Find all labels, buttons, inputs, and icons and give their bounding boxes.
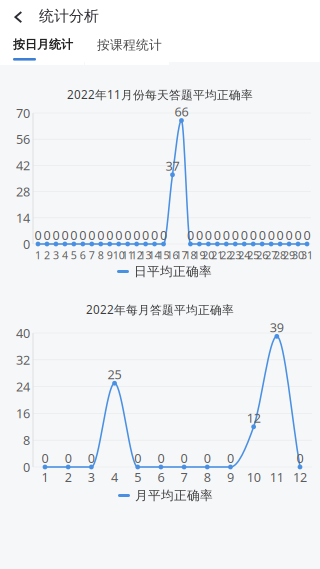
staticText: 0 <box>97 226 104 244</box>
staticText: 28 <box>274 248 286 262</box>
staticText: 17 <box>175 248 187 262</box>
staticText: 0 <box>250 226 257 244</box>
staticText: 31 <box>301 248 313 262</box>
staticText: 66 <box>174 103 188 120</box>
staticText: 统计分析 <box>39 7 99 25</box>
staticText: 0 <box>204 449 211 467</box>
staticText: 0 <box>214 226 221 244</box>
staticText: 9 <box>107 248 113 262</box>
staticText: 0 <box>43 226 50 244</box>
staticText: 14 <box>16 209 30 226</box>
staticText: 30 <box>292 248 304 262</box>
staticText: 0 <box>142 226 149 244</box>
staticText: 8 <box>204 468 211 486</box>
staticText: 0 <box>115 226 122 244</box>
staticText: 0 <box>23 235 30 253</box>
staticText: 12 <box>293 468 307 486</box>
staticText: 4 <box>62 248 68 262</box>
staticText: 7 <box>89 248 95 262</box>
staticText: 6 <box>157 468 164 486</box>
staticText: 23 <box>229 248 241 262</box>
staticText: 0 <box>133 226 140 244</box>
staticText: 8 <box>23 432 30 449</box>
staticText: 24 <box>238 248 250 262</box>
staticText: 0 <box>205 226 212 244</box>
staticText: 0 <box>134 449 141 467</box>
staticText: 0 <box>124 226 131 244</box>
staticText: 19 <box>193 248 205 262</box>
staticText: 3 <box>88 468 95 486</box>
staticText: 2022年11月份每天答题平均正确率 <box>67 86 253 102</box>
staticText: 37 <box>165 157 179 174</box>
staticText: 0 <box>303 226 310 244</box>
staticText: 0 <box>88 226 95 244</box>
staticText: 0 <box>286 226 293 244</box>
staticText: 3 <box>53 248 59 262</box>
staticText: 39 <box>270 319 284 336</box>
staticText: 0 <box>196 226 203 244</box>
staticText: 0 <box>227 449 234 467</box>
staticText: 14 <box>149 248 161 262</box>
staticText: 24 <box>16 378 30 395</box>
staticText: 5 <box>134 468 141 486</box>
staticText: 16 <box>16 405 30 422</box>
staticText: 25 <box>247 248 259 262</box>
staticText: 0 <box>151 226 158 244</box>
staticText: 月平均正确率 <box>135 487 213 503</box>
staticText: 0 <box>277 226 284 244</box>
staticText: 按课程统计 <box>97 37 162 53</box>
staticText: 12 <box>131 248 143 262</box>
staticText: 32 <box>16 351 30 368</box>
staticText: 16 <box>166 248 178 262</box>
staticText: 40 <box>16 324 30 342</box>
staticText: 0 <box>88 449 95 467</box>
staticText: 56 <box>16 131 30 148</box>
button[interactable]: Back <box>0 0 38 32</box>
staticText: 0 <box>41 449 48 467</box>
staticText: 13 <box>140 248 152 262</box>
staticText: 7 <box>181 468 188 486</box>
staticText: 0 <box>223 226 230 244</box>
staticText: 11 <box>270 468 284 486</box>
staticText: 按日月统计 <box>13 37 73 52</box>
staticText: 0 <box>160 226 167 244</box>
staticText: 21 <box>211 248 223 262</box>
staticText: 0 <box>79 226 86 244</box>
staticText: 0 <box>187 226 194 244</box>
staticText: 1 <box>35 248 41 262</box>
staticText: 9 <box>227 468 234 486</box>
staticText: 0 <box>106 226 113 244</box>
staticText: 8 <box>98 248 104 262</box>
staticText: 1 <box>41 468 48 486</box>
staticText: 0 <box>70 226 77 244</box>
staticText: 0 <box>241 226 248 244</box>
staticText: 2022年每月答题平均正确率 <box>86 301 234 317</box>
staticText: 12 <box>247 409 261 426</box>
staticText: 10 <box>247 468 261 486</box>
staticText: 70 <box>16 104 30 122</box>
staticText: 0 <box>34 226 41 244</box>
staticText: 0 <box>294 226 301 244</box>
staticText: 0 <box>23 458 30 476</box>
staticText: 2 <box>44 248 50 262</box>
staticText: 5 <box>71 248 77 262</box>
staticText: 25 <box>107 366 121 383</box>
staticText: 10 <box>113 248 125 262</box>
staticText: 18 <box>184 248 196 262</box>
staticText: 0 <box>61 226 68 244</box>
staticText: 0 <box>157 449 164 467</box>
staticText: 20 <box>202 248 214 262</box>
button[interactable]: 按日月统计 <box>0 35 84 65</box>
staticText: 4 <box>111 468 118 486</box>
staticText: 0 <box>268 226 275 244</box>
staticText: 6 <box>80 248 86 262</box>
staticText: 0 <box>65 449 72 467</box>
button[interactable]: 按课程统计 <box>85 35 169 65</box>
staticText: 日平均正确率 <box>134 263 212 279</box>
staticText: 22 <box>220 248 232 262</box>
staticText: 11 <box>122 248 134 262</box>
staticText: 0 <box>259 226 266 244</box>
staticText: 0 <box>181 449 188 467</box>
staticText: 2 <box>65 468 72 486</box>
staticText: 0 <box>52 226 59 244</box>
